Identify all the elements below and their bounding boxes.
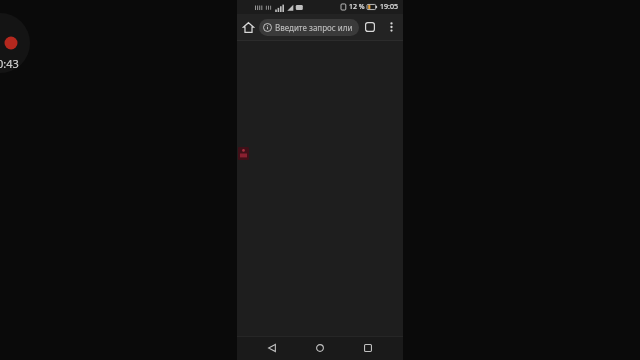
button[interactable]: Home	[237, 16, 259, 38]
button[interactable]: More options	[381, 17, 401, 37]
button[interactable]: Введите запрос или UR	[259, 19, 359, 36]
staticText: 12 %	[349, 2, 365, 12]
staticText: 19:05	[380, 2, 398, 12]
button[interactable]: Screen recording timer	[0, 13, 30, 73]
button[interactable]: Home	[310, 338, 330, 358]
staticText: 0:43	[0, 56, 19, 71]
button[interactable]: Tabs	[359, 16, 381, 38]
staticText: Введите запрос или UR	[275, 22, 353, 33]
button[interactable]: Back	[262, 338, 282, 358]
button[interactable]: Recent apps	[358, 338, 378, 358]
